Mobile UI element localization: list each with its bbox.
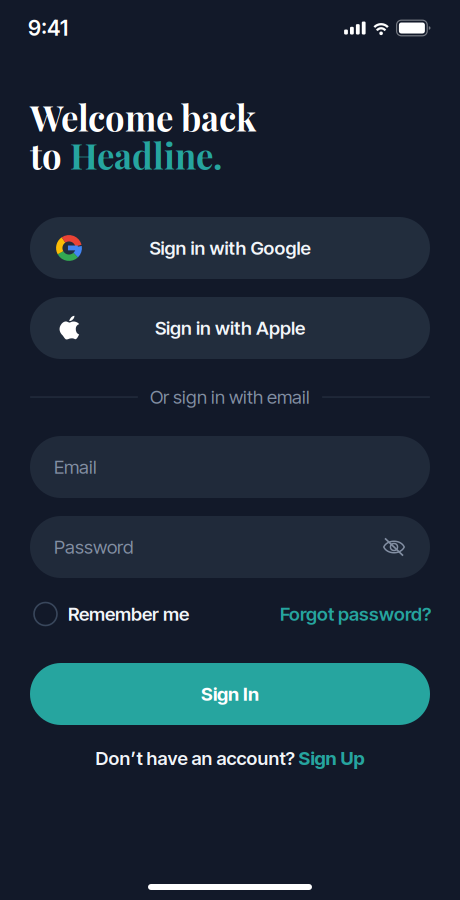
staticText: 9:41 <box>28 15 68 41</box>
staticText: Sign in with Google <box>149 237 310 259</box>
staticText: Don’t have an account? <box>95 747 298 770</box>
staticText: Sign Up <box>298 747 364 770</box>
staticText: Or sign in with email <box>150 386 310 408</box>
button[interactable]: Show password <box>373 526 415 568</box>
staticText: Headline. <box>70 132 222 178</box>
staticText: Forgot password? <box>280 603 431 625</box>
staticText: Sign In <box>201 683 259 705</box>
button[interactable]: Don’t have an account? <box>95 747 364 770</box>
staticText: Password <box>54 536 133 558</box>
button[interactable]: Sign in with Google <box>30 217 430 279</box>
staticText: Welcome back <box>30 94 256 140</box>
button[interactable]: Sign In <box>30 663 430 725</box>
staticText: Email <box>54 456 97 478</box>
staticText: Sign in with Apple <box>155 317 305 339</box>
staticText: Remember me <box>68 603 189 625</box>
staticText: to <box>30 132 70 178</box>
button[interactable]: Sign in with Apple <box>30 297 430 359</box>
button[interactable]: Remember me <box>34 602 189 625</box>
button[interactable]: Forgot password? <box>280 603 431 625</box>
